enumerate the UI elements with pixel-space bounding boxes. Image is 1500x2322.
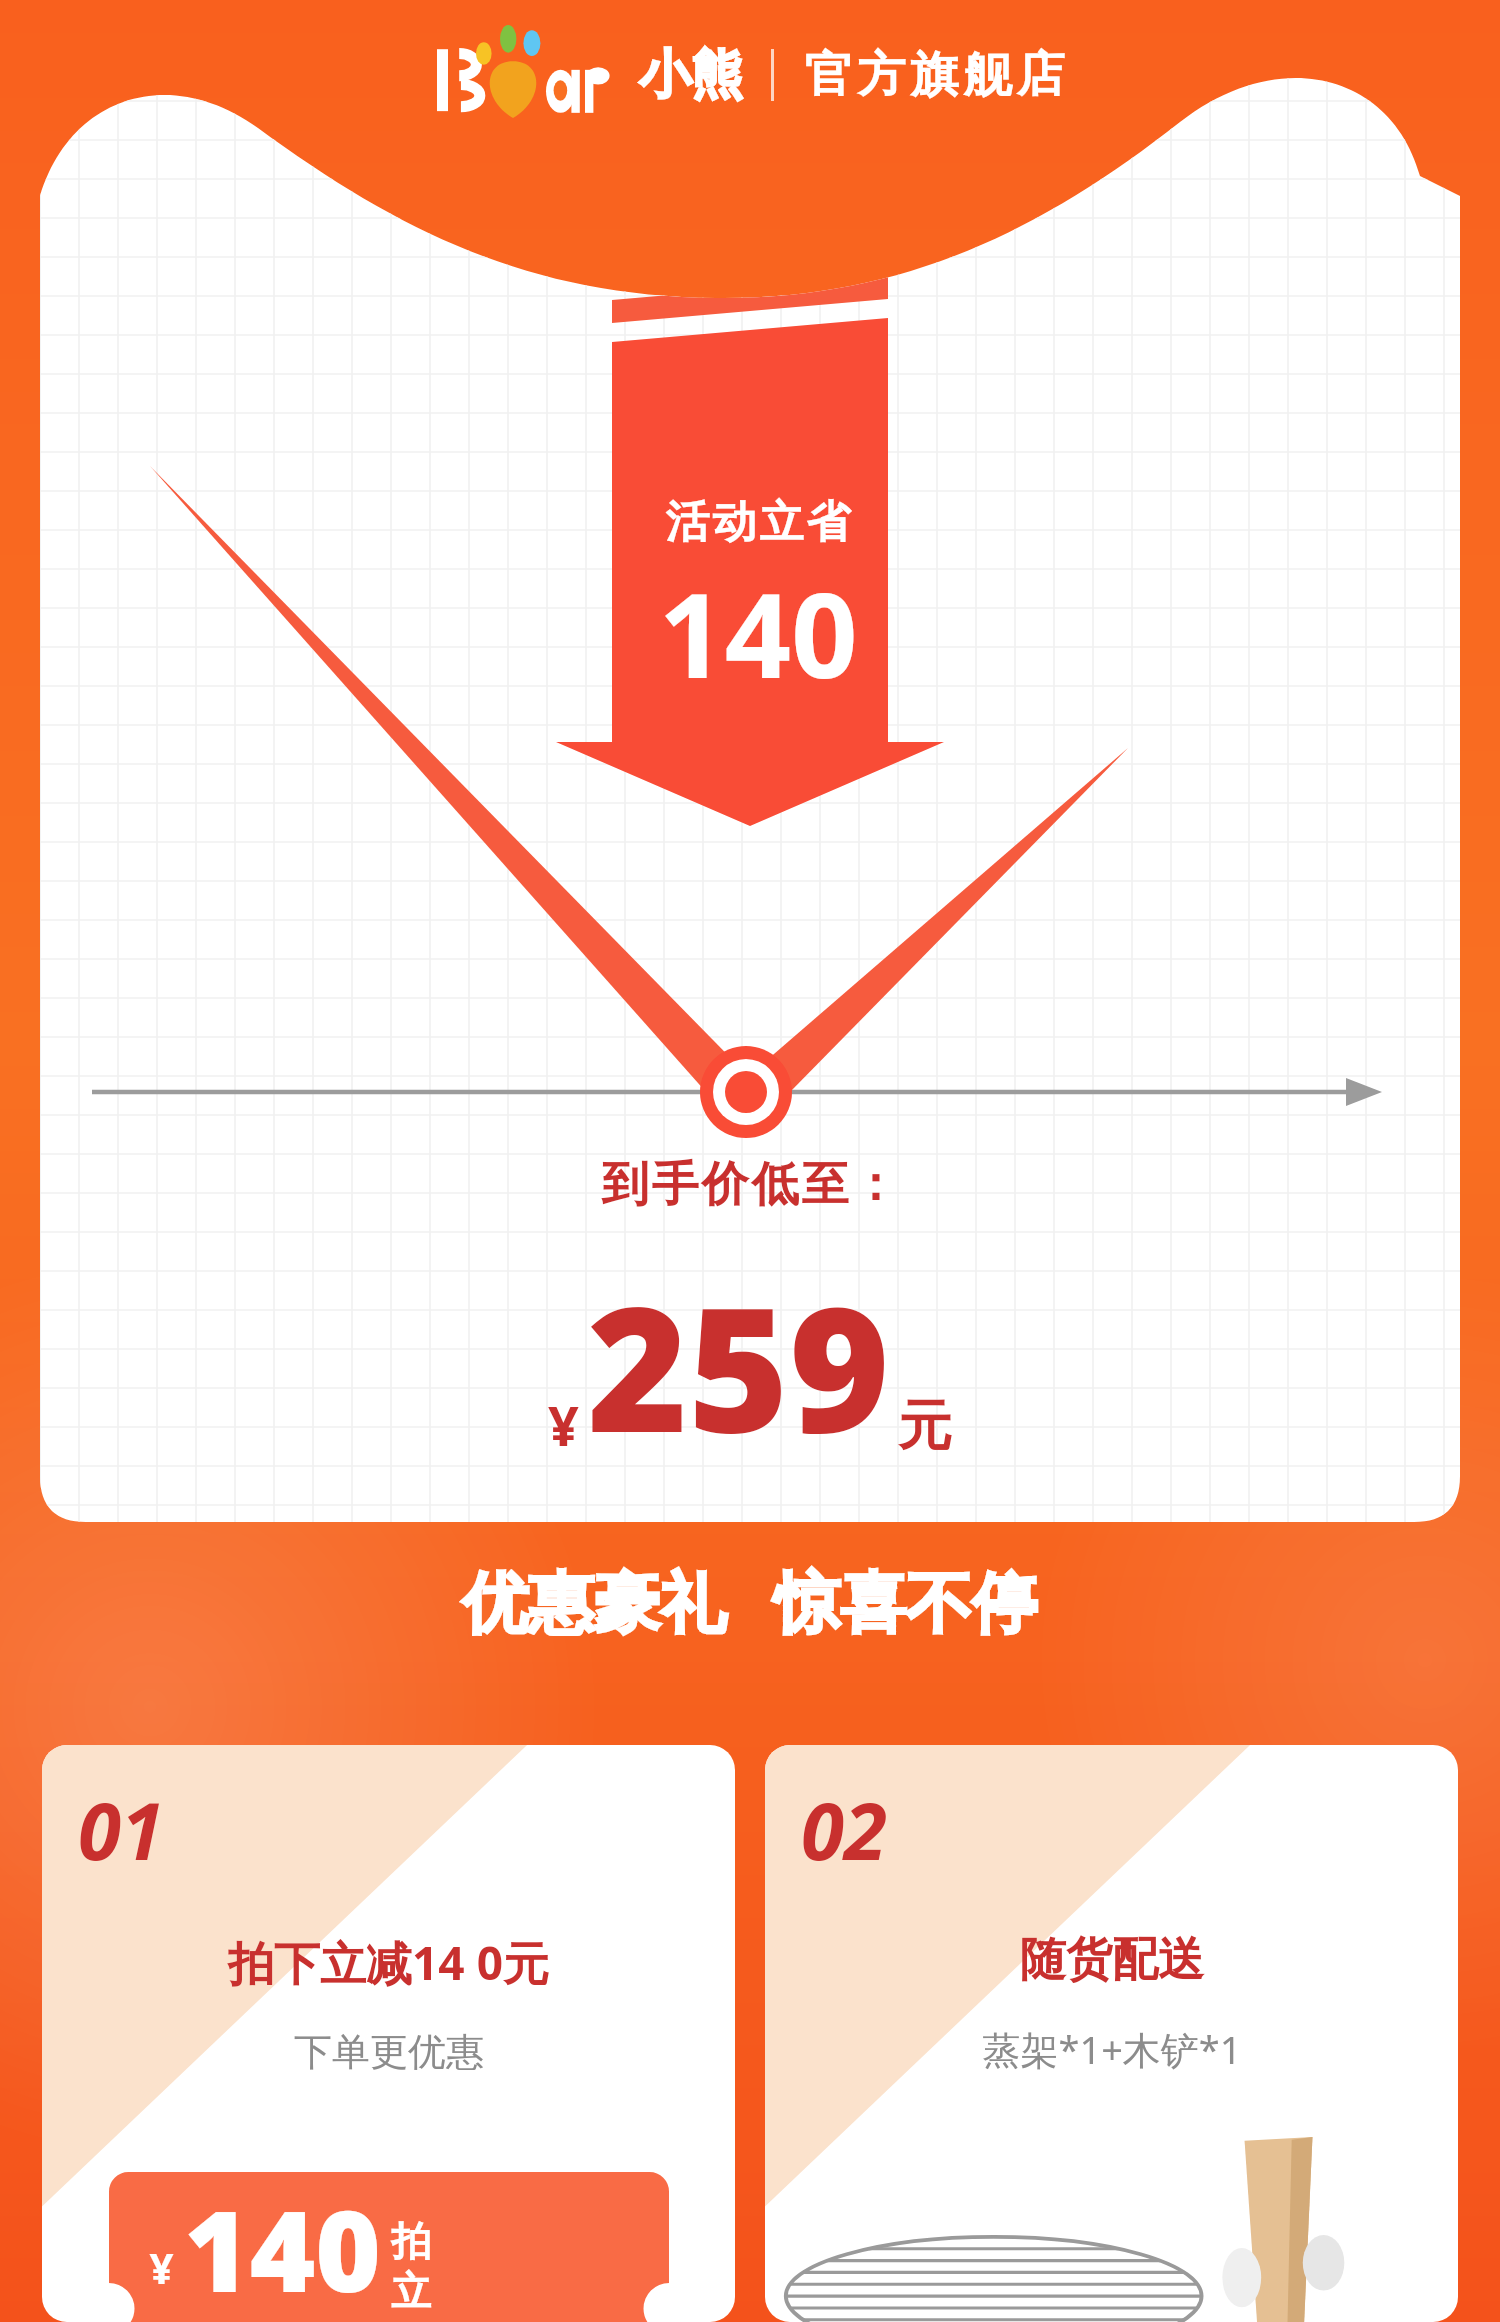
- staticText: 立: [391, 2266, 431, 2316]
- staticText: 140: [184, 2172, 381, 2322]
- staticText: 02: [801, 1777, 887, 1883]
- staticText: 小熊: [639, 42, 743, 108]
- staticText: 惊喜不停: [774, 1562, 1038, 1645]
- button[interactable]: Bear 小熊 官方旗舰店: [433, 32, 1067, 118]
- staticText: 随货配送: [1020, 1931, 1204, 1989]
- staticText: 活动立省: [664, 495, 852, 550]
- staticText: 拍下立减14 0元: [228, 1931, 549, 1994]
- staticText: 下单更优惠: [294, 2028, 484, 2076]
- staticText: 259: [587, 1248, 890, 1482]
- staticText: 拍: [391, 2216, 431, 2266]
- staticText: 蒸架*1+木铲*1: [982, 2023, 1242, 2075]
- staticText: 官方旗舰店: [802, 45, 1067, 105]
- staticText: ¥: [149, 2239, 174, 2296]
- staticText: 元: [898, 1392, 952, 1460]
- staticText: 优惠豪礼: [462, 1562, 726, 1645]
- staticText: 140: [658, 554, 858, 712]
- button[interactable]: 01: [42, 1745, 735, 2322]
- staticText: ¥: [548, 1388, 579, 1462]
- staticText: 到手价低至：: [600, 1155, 900, 1214]
- staticText: 01: [78, 1777, 164, 1883]
- button[interactable]: 02: [765, 1745, 1458, 2322]
